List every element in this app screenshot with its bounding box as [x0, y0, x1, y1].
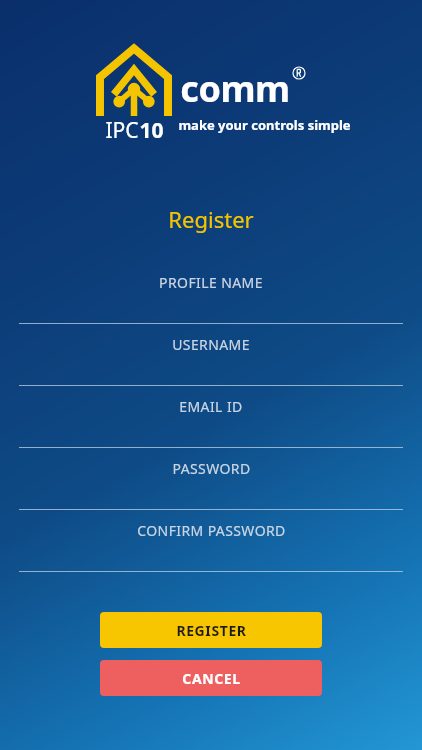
staticText: CONFIRM PASSWORD — [137, 521, 286, 540]
button[interactable]: EMAIL ID — [0, 386, 422, 448]
button[interactable]: PASSWORD — [0, 448, 422, 510]
button[interactable]: PROFILE NAME — [0, 262, 422, 324]
button[interactable]: CANCEL — [100, 660, 322, 696]
staticText: 10 — [139, 116, 164, 145]
staticText: CANCEL — [182, 669, 241, 688]
button[interactable]: CONFIRM PASSWORD — [0, 510, 422, 572]
staticText: IPC — [105, 116, 139, 145]
staticText: PASSWORD — [172, 459, 251, 478]
button[interactable]: USERNAME — [0, 324, 422, 386]
staticText: PROFILE NAME — [159, 273, 263, 292]
staticText: REGISTER — [176, 621, 247, 640]
staticText: make your controls simple — [178, 116, 351, 134]
staticText: USERNAME — [172, 335, 250, 354]
staticText: comm — [180, 64, 290, 113]
staticText: Register — [168, 204, 254, 234]
button[interactable]: REGISTER — [100, 612, 322, 648]
staticText: EMAIL ID — [179, 397, 243, 416]
